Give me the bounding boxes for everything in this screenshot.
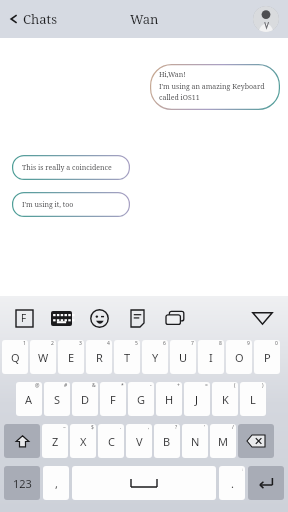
button[interactable]: T <box>114 340 140 374</box>
staticText: Q <box>11 350 20 365</box>
staticText: 8 <box>219 340 222 347</box>
staticText: H <box>165 392 174 407</box>
button[interactable]: . <box>219 466 245 500</box>
staticText: + <box>177 382 180 389</box>
staticText: I <box>209 350 213 365</box>
button[interactable]: This is really a coincidence <box>12 155 130 180</box>
staticText: Hi,Wan! I'm using an amazing Keyboard ca… <box>159 70 265 102</box>
button[interactable]: S <box>44 382 70 416</box>
staticText: V <box>136 434 143 449</box>
button[interactable]: Profile <box>253 6 279 32</box>
button[interactable]: C <box>98 424 124 458</box>
staticText: * <box>121 382 124 389</box>
button[interactable]: H <box>156 382 182 416</box>
button[interactable]: O <box>226 340 252 374</box>
staticText: 123 <box>13 476 32 491</box>
staticText: C <box>108 434 115 449</box>
staticText: F <box>21 311 27 325</box>
button[interactable]: X <box>70 424 96 458</box>
staticText: # <box>64 382 68 389</box>
staticText: K <box>222 392 229 407</box>
staticText: This is really a coincidence <box>22 163 112 173</box>
staticText: 9 <box>247 340 250 347</box>
button[interactable]: Space <box>72 466 216 500</box>
staticText: G <box>137 392 146 407</box>
button[interactable]: Backspace <box>238 424 274 458</box>
button[interactable]: Emoji <box>88 307 110 329</box>
staticText: @ <box>35 382 40 389</box>
staticText: M <box>218 434 228 449</box>
staticText: X <box>80 434 87 449</box>
staticText: 1 <box>23 340 26 347</box>
staticText: 2 <box>51 340 54 347</box>
button[interactable]: Shift <box>4 424 40 458</box>
button[interactable]: Z <box>42 424 68 458</box>
staticText: R <box>96 350 103 365</box>
staticText: W <box>38 350 49 365</box>
button[interactable]: U <box>170 340 196 374</box>
other: Back <box>8 13 20 25</box>
staticText: 6 <box>163 340 166 347</box>
button[interactable]: Enter <box>248 466 284 500</box>
button[interactable]: Fonts <box>14 308 34 328</box>
staticText: ? <box>175 424 178 431</box>
staticText: D <box>81 392 90 407</box>
staticText: I'm using it, too <box>22 200 74 210</box>
button[interactable]: Back <box>8 10 57 28</box>
button[interactable]: V <box>126 424 152 458</box>
button[interactable]: W <box>30 340 56 374</box>
staticText: 7 <box>191 340 194 347</box>
button[interactable]: Keyboard <box>50 307 72 329</box>
staticText: $ <box>91 424 94 431</box>
button[interactable]: M <box>210 424 236 458</box>
staticText: Chats <box>23 10 57 28</box>
button[interactable]: K <box>212 382 238 416</box>
button[interactable]: I'm using it, too <box>12 192 130 217</box>
staticText: 3 <box>79 340 82 347</box>
button[interactable]: B <box>154 424 180 458</box>
staticText: S <box>54 392 61 407</box>
staticText: Y <box>152 350 159 365</box>
staticText: Wan <box>130 10 159 28</box>
staticText: 0 <box>275 340 278 347</box>
button[interactable]: P <box>254 340 280 374</box>
staticText: - <box>150 382 152 389</box>
staticText: N <box>191 434 200 449</box>
button[interactable]: G <box>128 382 154 416</box>
button[interactable]: Q <box>2 340 28 374</box>
staticText: ) <box>262 382 264 389</box>
button[interactable]: , <box>43 466 69 500</box>
button[interactable]: I <box>198 340 224 374</box>
button[interactable]: L <box>240 382 266 416</box>
staticText: 5 <box>135 340 138 347</box>
button[interactable]: A <box>16 382 42 416</box>
staticText: 4 <box>107 340 110 347</box>
button[interactable]: Stickers <box>164 307 186 329</box>
button[interactable]: Hide keyboard <box>250 306 274 330</box>
button[interactable]: J <box>184 382 210 416</box>
button[interactable]: Y <box>142 340 168 374</box>
staticText: T <box>124 350 131 365</box>
staticText: & <box>92 382 96 389</box>
button[interactable]: F <box>100 382 126 416</box>
staticText: B <box>163 434 171 449</box>
staticText: P <box>264 350 271 365</box>
staticText: O <box>235 350 244 365</box>
button[interactable]: Hi,Wan! I'm using an amazing Keyboard ca… <box>150 64 280 110</box>
button[interactable]: 123 <box>4 466 40 500</box>
staticText: , <box>148 424 150 431</box>
button[interactable]: E <box>58 340 84 374</box>
staticText: A <box>25 392 33 407</box>
staticText: ܃ <box>241 466 243 473</box>
staticText: L <box>250 392 256 407</box>
staticText: ~ <box>63 424 66 431</box>
staticText: Z <box>52 434 59 449</box>
button[interactable]: R <box>86 340 112 374</box>
staticText: / <box>232 424 234 431</box>
button[interactable]: N <box>182 424 208 458</box>
staticText: ( <box>234 382 236 389</box>
button[interactable]: D <box>72 382 98 416</box>
staticText: F <box>110 392 116 407</box>
staticText: J <box>195 392 199 407</box>
button[interactable]: Notes <box>126 307 148 329</box>
